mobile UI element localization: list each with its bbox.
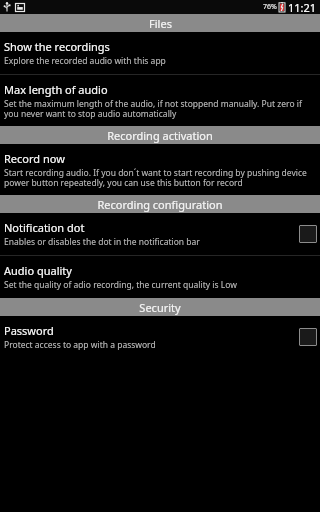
staticText: Security: [139, 300, 181, 315]
button[interactable]: Record now: [0, 144, 320, 195]
staticText: Recording activation: [107, 128, 213, 143]
button[interactable]: Audio quality: [0, 256, 320, 298]
staticText: Recording configuration: [97, 197, 223, 212]
staticText: Record now: [4, 151, 65, 166]
staticText: 11:21: [288, 0, 317, 14]
staticText: Set the maximum length of the audio, if …: [4, 98, 317, 119]
button[interactable]: Max length of audio: [0, 75, 320, 126]
staticText: Notification dot: [4, 220, 85, 235]
staticText: Max length of audio: [4, 82, 108, 97]
button[interactable]: Toggle Notification dot: [299, 225, 317, 243]
button[interactable]: Password: [0, 316, 320, 358]
button[interactable]: Show the recordings: [0, 32, 320, 74]
staticText: Set the quality of adio recording, the c…: [4, 279, 237, 291]
staticText: Files: [149, 16, 172, 31]
staticText: Enables or disables the dot in the notif…: [4, 236, 200, 248]
staticText: Protect access to app with a password: [4, 339, 156, 351]
button[interactable]: Toggle Password: [299, 328, 317, 346]
staticText: Audio quality: [4, 263, 72, 278]
button[interactable]: Notification dot: [0, 213, 320, 255]
staticText: Show the recordings: [4, 39, 110, 54]
staticText: Explore the recorded audio with this app: [4, 55, 166, 67]
staticText: Password: [4, 323, 54, 338]
staticText: 76%: [263, 2, 277, 12]
staticText: Start recording audio. If you don´t want…: [4, 167, 317, 188]
